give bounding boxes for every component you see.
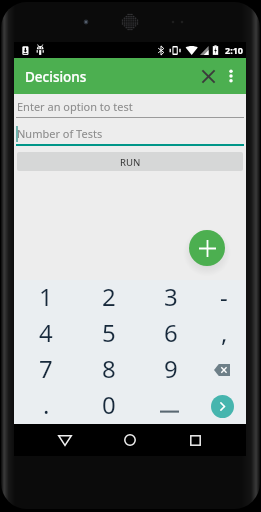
staticText: 6 (164, 316, 178, 349)
button[interactable]: Home (117, 427, 143, 453)
button[interactable]: 1 (14, 280, 74, 316)
staticText: Number of Tests (17, 126, 103, 141)
button[interactable]: More options (220, 65, 242, 87)
button[interactable]: 6 (140, 316, 198, 352)
staticText: Enter an option to test (17, 99, 133, 114)
button[interactable]: Add (189, 230, 225, 266)
button[interactable]: , (198, 316, 246, 352)
staticText: , (221, 316, 228, 349)
staticText: . (43, 388, 50, 421)
staticText: 7 (39, 352, 53, 385)
staticText: 3 (164, 280, 178, 313)
button[interactable]: Back (52, 427, 78, 453)
button[interactable]: - (198, 280, 246, 316)
button[interactable]: . (14, 388, 74, 424)
button[interactable]: 3 (140, 280, 198, 316)
button[interactable] (198, 388, 246, 424)
button[interactable]: 0 (74, 388, 140, 424)
button[interactable] (198, 352, 246, 388)
staticText: 0 (102, 388, 116, 421)
staticText: 8 (102, 352, 116, 385)
button[interactable]: 2 (74, 280, 140, 316)
staticText: 4 (39, 316, 53, 349)
staticText: 9 (164, 352, 178, 385)
staticText: Decisions (25, 68, 87, 86)
staticText: 5 (102, 316, 116, 349)
button[interactable]: Recents (182, 427, 208, 453)
button[interactable]: RUN (17, 152, 243, 171)
staticText: 1 (39, 280, 53, 313)
button[interactable]: 5 (74, 316, 140, 352)
staticText: 2 (102, 280, 116, 313)
button[interactable]: Close (194, 62, 222, 90)
staticText: RUN (120, 156, 141, 169)
button[interactable]: 8 (74, 352, 140, 388)
button[interactable]: 4 (14, 316, 74, 352)
button[interactable]: 7 (14, 352, 74, 388)
button[interactable]: 9 (140, 352, 198, 388)
staticText: - (220, 280, 228, 313)
button[interactable] (140, 388, 198, 424)
staticText: 2:10 (225, 44, 243, 56)
